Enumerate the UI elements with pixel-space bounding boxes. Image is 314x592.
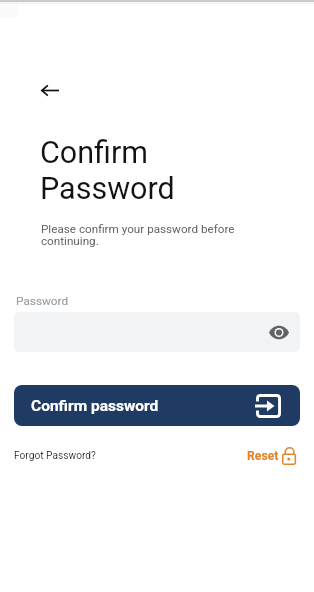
button[interactable]: Confirm password	[14, 385, 300, 426]
button[interactable]: Forgot Password?	[14, 450, 96, 462]
staticText: Confirm Password	[40, 135, 175, 207]
button[interactable]: Show password	[265, 318, 293, 346]
staticText: Please confirm your password before cont…	[41, 222, 235, 248]
button[interactable]: Show password	[14, 312, 300, 352]
staticText: Password	[16, 294, 69, 308]
button[interactable]: Reset	[247, 447, 297, 465]
button[interactable]: Back	[33, 73, 67, 107]
staticText: Confirm password	[31, 397, 159, 415]
staticText: Reset	[247, 449, 279, 463]
